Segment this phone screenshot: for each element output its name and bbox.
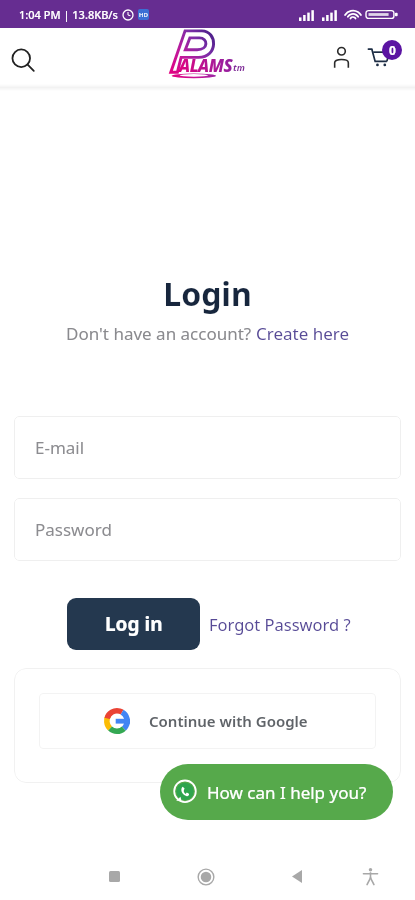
staticText: Password — [35, 518, 112, 541]
button[interactable]: Log in — [67, 598, 200, 650]
staticText: 0 — [389, 42, 396, 58]
button[interactable]: How can I help you? — [160, 764, 393, 820]
staticText: HD — [139, 11, 148, 19]
button[interactable]: Forgot Password ? — [203, 607, 357, 641]
staticText: 1:04 PM | 13.8KB/s — [19, 7, 118, 22]
staticText: Log in — [105, 611, 163, 637]
button[interactable]: Password — [14, 498, 401, 561]
staticText: How can I help you? — [207, 781, 367, 804]
button[interactable]: E-mail — [14, 416, 401, 479]
staticText: Continue with Google — [149, 711, 308, 731]
button[interactable]: Account — [321, 37, 361, 77]
button[interactable]: Cart — [360, 39, 404, 83]
button[interactable]: Continue with Google — [39, 693, 376, 749]
staticText: Login — [0, 272, 415, 316]
button[interactable]: Home — [183, 854, 228, 899]
button[interactable]: Accessibility — [348, 854, 393, 899]
staticText: ALAMS — [179, 54, 233, 77]
button[interactable]: Recents — [92, 854, 137, 899]
button[interactable]: Search — [1, 38, 45, 82]
staticText: E-mail — [35, 436, 85, 459]
staticText: tm — [233, 61, 245, 73]
staticText: Don't have an account? — [66, 322, 256, 345]
button[interactable]: Back — [274, 854, 319, 899]
button[interactable]: Create here — [256, 322, 350, 345]
